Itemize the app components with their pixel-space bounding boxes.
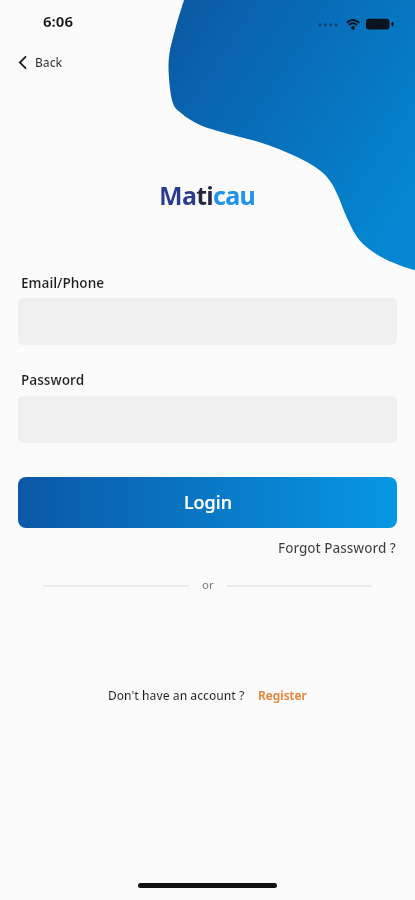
staticText: or bbox=[202, 577, 214, 593]
button[interactable]: Login bbox=[18, 477, 397, 528]
staticText: 6:06 bbox=[43, 11, 73, 31]
staticText: Login bbox=[184, 490, 232, 515]
button[interactable]: Forgot Password ? bbox=[278, 539, 396, 557]
staticText: Forgot Password ? bbox=[278, 539, 396, 557]
button[interactable]: Back bbox=[8, 48, 73, 76]
button[interactable]: Register bbox=[258, 687, 307, 703]
staticText: Back bbox=[35, 54, 63, 70]
staticText: Maticau bbox=[159, 178, 256, 212]
staticText: Don't have an account ? bbox=[108, 687, 245, 703]
staticText: Password bbox=[21, 371, 85, 389]
staticText: Email/Phone bbox=[21, 274, 105, 292]
staticText: Register bbox=[258, 687, 307, 703]
